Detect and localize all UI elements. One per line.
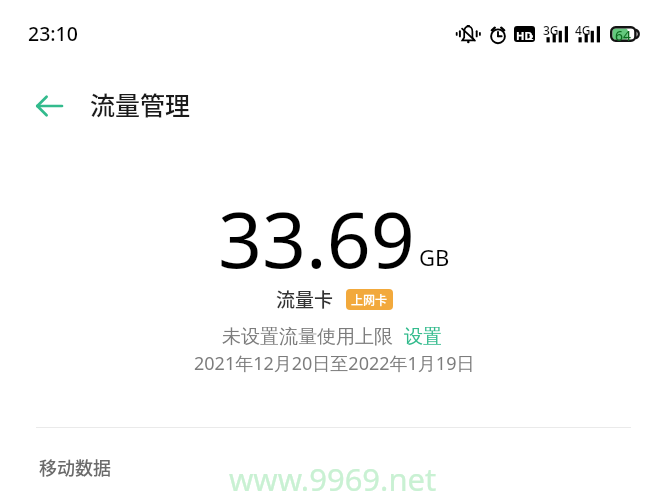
staticText: 流量卡 [276,285,334,313]
staticText: 33.69 [218,186,415,291]
button[interactable]: 上网卡 [346,289,393,310]
button[interactable]: Back [26,84,72,127]
staticText: 上网卡 [351,291,388,308]
staticText: 64 [615,26,632,42]
staticText: 2 [529,32,534,42]
staticText: 流量管理 [90,86,191,122]
staticText: 2021年12月20日至2022年1月19日 [194,351,475,376]
staticText: 4G [575,22,591,38]
staticText: 23:10 [28,20,78,47]
staticText: 移动数据 [39,454,111,480]
staticText: 设置 [404,325,442,349]
button[interactable]: 移动数据 [0,436,668,500]
staticText: GB [419,242,450,272]
staticText: www.9969.net [229,458,437,500]
staticText: 3G [543,22,559,38]
staticText: HD [516,28,533,42]
staticText: 未设置流量使用上限 [222,325,393,349]
button[interactable]: 设置 [399,322,447,352]
